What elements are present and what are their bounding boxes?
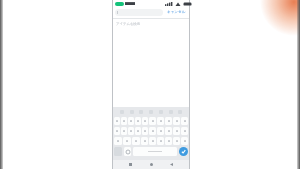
button[interactable]: Home [148,161,155,168]
button[interactable]: Send [179,147,188,156]
button[interactable]: Key [121,127,127,135]
button[interactable]: Key [149,127,156,135]
button[interactable]: Key [157,137,164,145]
staticText: アイテムを検索 [116,22,141,26]
button[interactable]: Language [124,147,131,156]
button[interactable]: Key [181,117,188,125]
button[interactable] [115,9,163,16]
button[interactable]: Key [149,117,156,125]
button[interactable]: Key [173,117,180,125]
button[interactable]: Key [135,117,141,125]
button[interactable]: Back [168,161,175,168]
button[interactable]: Key [165,127,172,135]
button[interactable]: Key [141,137,148,145]
button[interactable] [133,147,177,156]
button[interactable]: Key [157,117,164,125]
button[interactable]: キャンセル [166,9,187,16]
button[interactable]: Recents [127,161,134,168]
button[interactable]: Key [135,127,141,135]
button[interactable]: Key [181,127,188,135]
button[interactable]: Key [128,117,134,125]
button[interactable]: Key [165,137,172,145]
button[interactable]: Key [142,127,148,135]
button[interactable]: Key [123,137,131,145]
button[interactable]: Key [165,117,172,125]
button[interactable]: Key [142,117,148,125]
button[interactable]: Key [121,117,127,125]
button[interactable]: Key [114,127,120,135]
staticText: キャンセル [167,10,186,15]
button[interactable]: Key [173,127,180,135]
button[interactable]: Key [157,127,164,135]
button[interactable]: Key [132,137,140,145]
button[interactable]: Key [149,137,156,145]
button[interactable]: Key [114,137,122,145]
button[interactable]: Key [181,137,188,145]
button[interactable]: Key [114,117,120,125]
button[interactable]: Key [128,127,134,135]
button[interactable]: Key [173,137,180,145]
